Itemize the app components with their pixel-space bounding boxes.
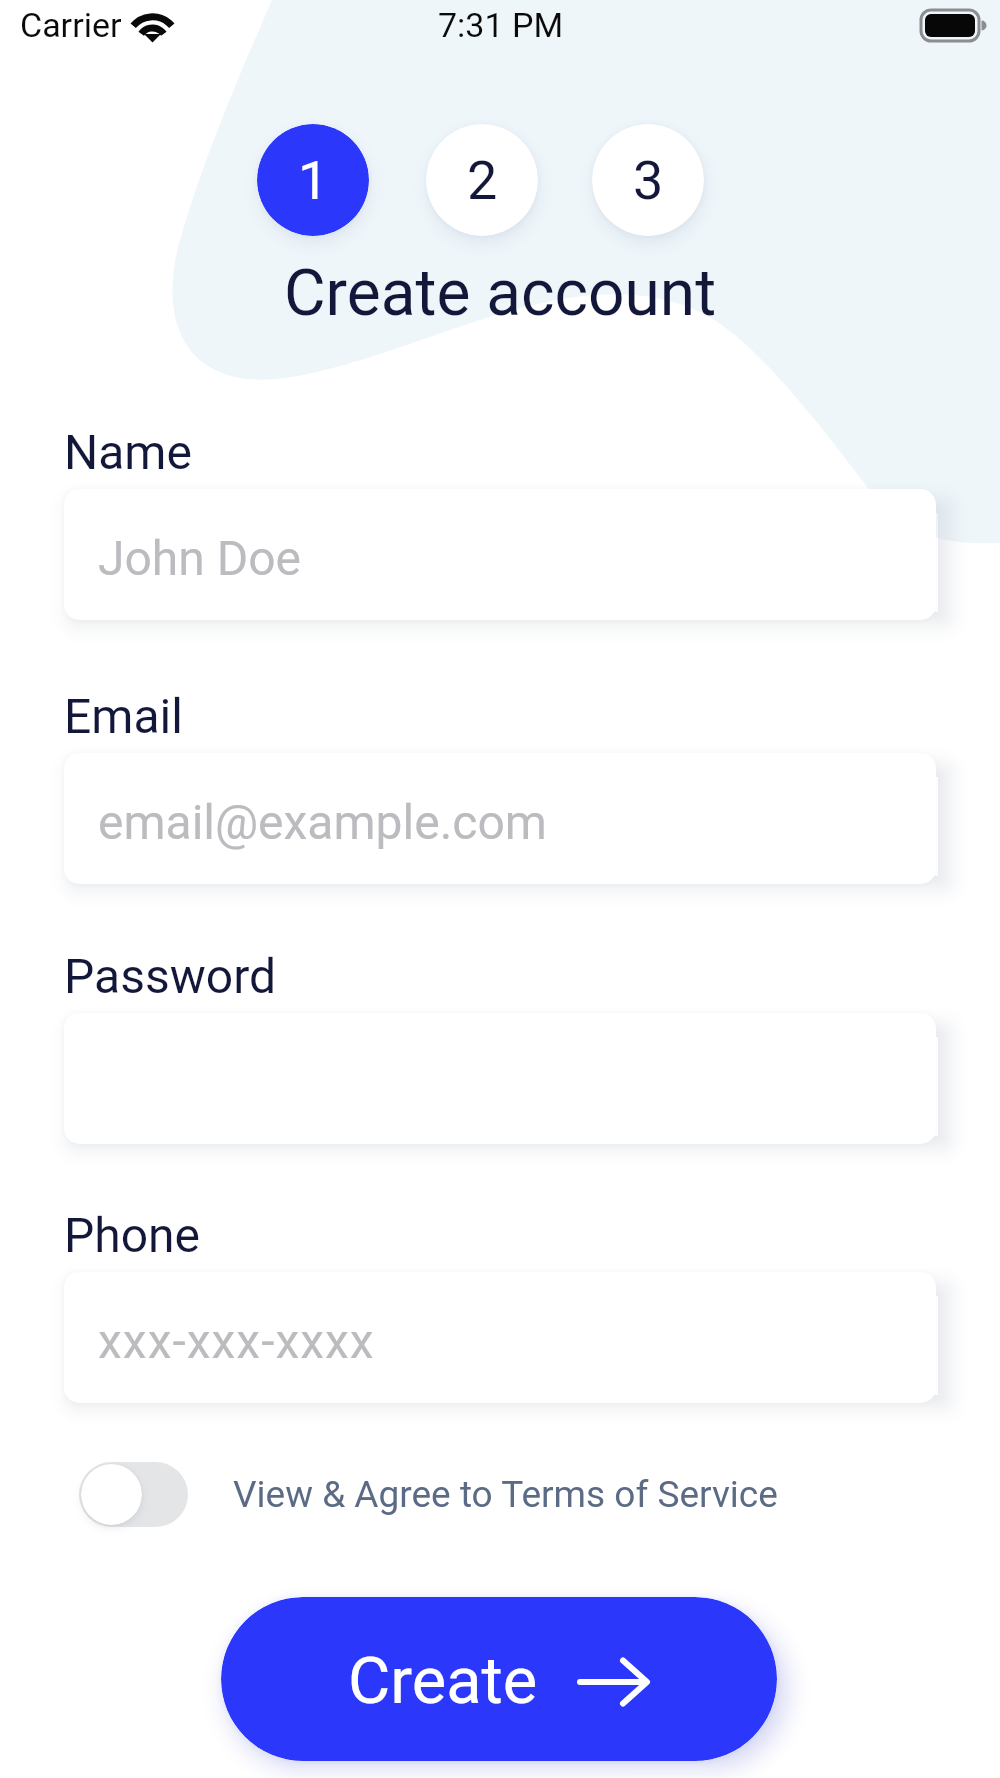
button[interactable]: 1: [257, 124, 369, 236]
staticText: 3: [633, 149, 664, 212]
button[interactable]: Toggle agree to Terms of Service: [79, 1462, 778, 1527]
staticText: John Doe: [98, 530, 302, 586]
staticText: 7:31 PM: [438, 5, 564, 45]
button[interactable]: Create: [221, 1597, 777, 1761]
staticText: 1: [298, 149, 329, 212]
button[interactable]: 2: [426, 124, 538, 236]
staticText: Phone: [64, 1207, 201, 1263]
staticText: Create account: [0, 256, 1000, 331]
staticText: Carrier: [20, 5, 122, 45]
staticText: Email: [64, 688, 183, 744]
button[interactable]: email@example.com: [64, 753, 936, 884]
staticText: Password: [64, 948, 277, 1004]
button[interactable]: xxx-xxx-xxxx: [64, 1272, 936, 1403]
button[interactable]: Toggle agree to Terms of Service: [79, 1462, 188, 1527]
staticText: xxx-xxx-xxxx: [98, 1313, 375, 1369]
staticText: 2: [467, 149, 498, 212]
staticText: View & Agree to Terms of Service: [233, 1473, 778, 1516]
staticText: Name: [64, 424, 192, 480]
button[interactable]: John Doe: [64, 489, 936, 620]
staticText: email@example.com: [98, 794, 547, 850]
staticText: Create: [348, 1643, 538, 1719]
button[interactable]: 3: [592, 124, 704, 236]
